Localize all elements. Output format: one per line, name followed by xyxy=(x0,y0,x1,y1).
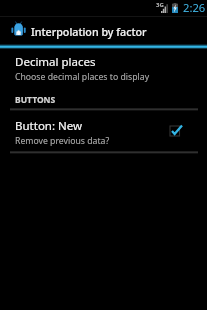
staticText: Interpolation by factor xyxy=(31,25,147,40)
staticText: Choose decimal places to display xyxy=(15,71,150,83)
other: Toggle xyxy=(167,122,185,140)
staticText: 3G xyxy=(156,1,164,9)
button[interactable]: Decimal places xyxy=(0,48,207,86)
button[interactable]: Button: New xyxy=(0,112,207,152)
staticText: Remove previous data? xyxy=(15,135,110,147)
staticText: Button: New xyxy=(15,118,83,134)
staticText: 2:26 xyxy=(183,0,206,15)
staticText: Decimal places xyxy=(15,54,96,70)
staticText: BUTTONS xyxy=(15,94,56,106)
